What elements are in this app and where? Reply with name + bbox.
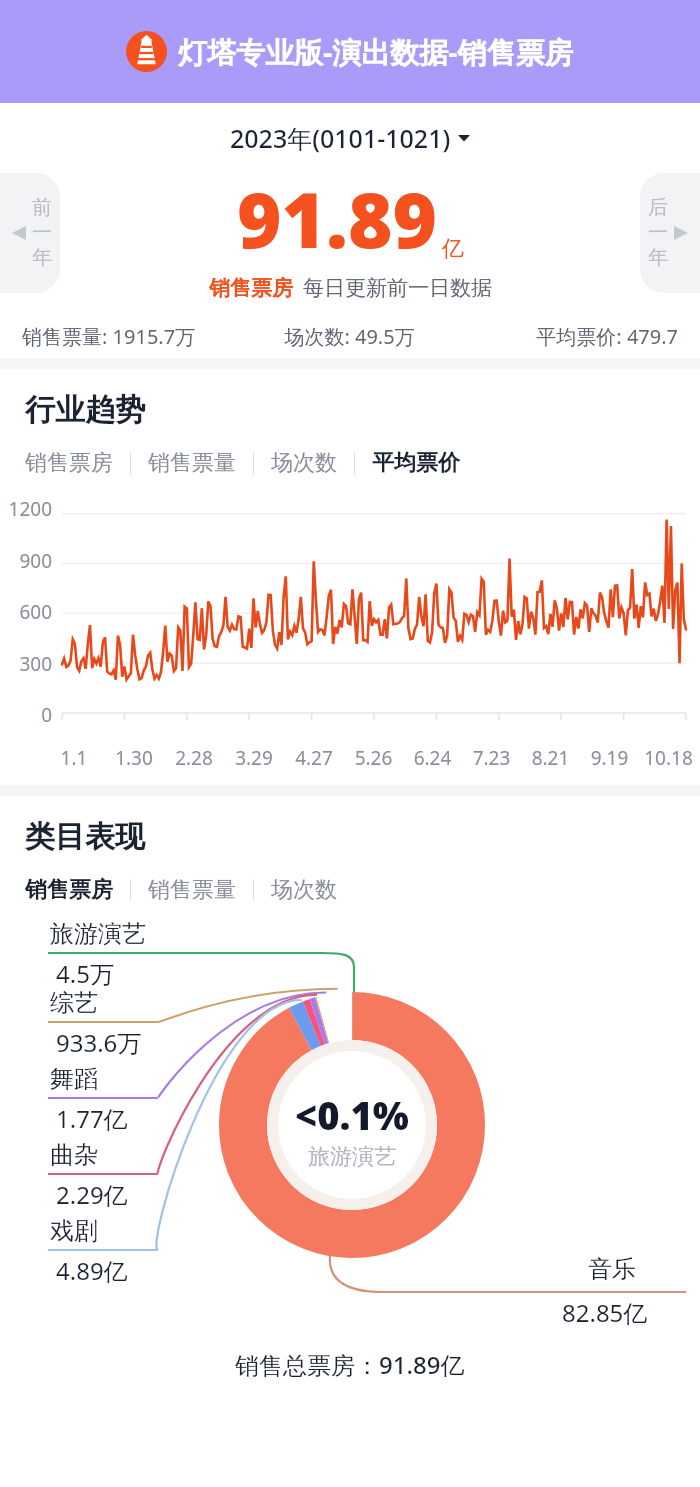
staticText: 4.27: [284, 745, 344, 771]
staticText: 5.26: [344, 745, 403, 771]
staticText: 场次数: 49.5万: [240, 323, 459, 350]
staticText: 销售总票房：91.89亿: [235, 1348, 465, 1381]
staticText: 一: [648, 220, 668, 245]
button[interactable]: 场次数: [271, 876, 337, 904]
staticText: 后: [648, 195, 668, 220]
staticText: 300: [0, 651, 52, 677]
staticText: 销售票房: [25, 876, 113, 904]
staticText: 类目表现: [25, 818, 145, 856]
staticText: 戏剧: [50, 1216, 98, 1246]
button[interactable]: 场次数: [271, 449, 337, 477]
button[interactable]: 2023年(0101-1021): [230, 121, 470, 155]
button[interactable]: 销售票量: [148, 876, 236, 904]
staticText: 3.29: [224, 745, 284, 771]
button[interactable]: 后一年: [640, 173, 700, 293]
staticText: 6.24: [403, 745, 462, 771]
staticText: 一: [32, 220, 52, 245]
staticText: <0.1%: [295, 1089, 409, 1141]
staticText: 平均票价: 479.7: [459, 323, 678, 350]
staticText: 销售票量: [148, 876, 236, 904]
staticText: 900: [0, 548, 52, 574]
button[interactable]: 前一年: [0, 173, 60, 293]
staticText: 1200: [0, 496, 52, 522]
staticText: 7.23: [462, 745, 521, 771]
other: 灯塔专业版图标: [126, 31, 167, 72]
staticText: 旅游演艺: [308, 1143, 396, 1171]
staticText: 年: [32, 245, 52, 270]
staticText: 舞蹈: [50, 1064, 98, 1094]
button[interactable]: 销售票房: [25, 449, 113, 477]
staticText: 销售票房: [25, 449, 113, 477]
staticText: 亿: [442, 235, 464, 263]
staticText: 2023年(0101-1021): [230, 121, 451, 155]
staticText: 旅游演艺: [50, 919, 146, 949]
staticText: 933.6万: [56, 1026, 142, 1059]
staticText: 场次数: [271, 449, 337, 477]
button[interactable]: 销售票房: [25, 876, 113, 904]
staticText: 综艺: [50, 988, 98, 1018]
staticText: 平均票价: [372, 449, 460, 477]
button[interactable]: 销售票量: [148, 449, 236, 477]
staticText: 9.19: [580, 745, 639, 771]
staticText: 4.89亿: [56, 1254, 128, 1287]
staticText: 1.30: [104, 745, 164, 771]
staticText: 场次数: [271, 876, 337, 904]
staticText: 销售票房: [209, 275, 293, 301]
staticText: 音乐: [588, 1254, 636, 1284]
staticText: 每日更新前一日数据: [303, 275, 492, 301]
staticText: 销售票量: 1915.7万: [22, 323, 240, 350]
staticText: 4.5万: [56, 957, 114, 990]
staticText: 1.1: [44, 745, 104, 771]
staticText: 91.89: [237, 167, 438, 271]
staticText: 82.85亿: [562, 1296, 648, 1329]
staticText: 1.77亿: [56, 1102, 128, 1135]
staticText: 曲杂: [50, 1140, 98, 1170]
staticText: 8.21: [521, 745, 580, 771]
staticText: 行业趋势: [25, 391, 145, 429]
staticText: 年: [648, 245, 668, 270]
staticText: 600: [0, 599, 52, 625]
staticText: 2.29亿: [56, 1178, 128, 1211]
staticText: 10.18: [639, 745, 698, 771]
button[interactable]: 平均票价: [372, 449, 460, 477]
staticText: 2.28: [164, 745, 224, 771]
staticText: 销售票量: [148, 449, 236, 477]
staticText: 0: [0, 702, 52, 728]
staticText: 灯塔专业版-演出数据-销售票房: [178, 32, 574, 72]
staticText: 前: [32, 195, 52, 220]
